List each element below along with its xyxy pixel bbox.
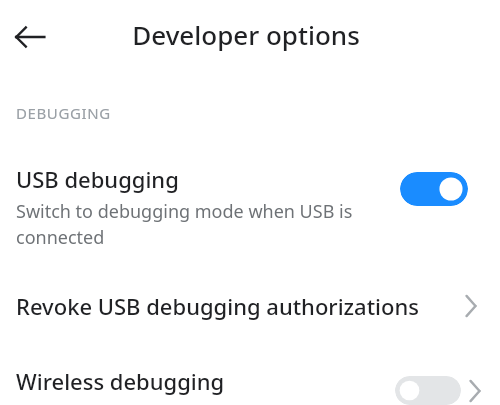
button[interactable]: Wireless debugging: [0, 350, 500, 405]
staticText: Switch to debugging mode when USB is con…: [16, 199, 396, 249]
staticText: DEBUGGING: [16, 103, 111, 123]
staticText: Revoke USB debugging authorizations: [16, 291, 458, 321]
button[interactable]: Back: [4, 11, 56, 63]
button[interactable]: Revoke USB debugging authorizations: [0, 272, 500, 340]
button[interactable]: Wireless debugging toggle, off: [395, 376, 461, 405]
staticText: USB debugging: [16, 164, 179, 194]
staticText: Wireless debugging: [16, 366, 395, 396]
staticText: Developer options: [72, 17, 420, 52]
button[interactable]: USB debugging: [0, 152, 500, 262]
button[interactable]: USB debugging toggle, on: [400, 172, 468, 206]
